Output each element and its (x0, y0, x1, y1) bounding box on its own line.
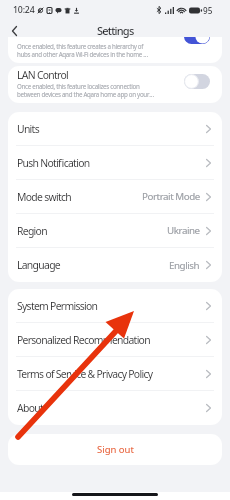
staticText: Personalized Recommendation (17, 333, 150, 347)
staticText: Once enabled, this feature localizes con… (17, 82, 155, 99)
button[interactable]: Sign out (8, 434, 222, 465)
staticText: English (169, 259, 200, 272)
staticText: Language (17, 258, 60, 272)
staticText: Push Notification (17, 156, 90, 170)
button[interactable]: Personalized Recommendation (8, 323, 222, 356)
button[interactable]: Back (6, 23, 22, 39)
button[interactable]: Units (8, 112, 222, 145)
staticText: Sign out (97, 443, 134, 456)
button[interactable]: Terms of Service & Privacy Policy (8, 357, 222, 390)
staticText: 10:24 (13, 4, 35, 16)
button[interactable]: Once enabled, this feature creates a hie… (8, 37, 222, 63)
staticText: About (17, 401, 43, 415)
button[interactable]: LAN Control (8, 66, 222, 103)
staticText: Terms of Service & Privacy Policy (17, 367, 153, 381)
staticText: LAN Control (17, 68, 69, 82)
button[interactable]: Mode switch (8, 180, 222, 213)
button[interactable]: System Permission (8, 289, 222, 322)
staticText: 95 (203, 5, 213, 16)
staticText: System Permission (17, 299, 98, 313)
staticText: Ukraine (167, 224, 200, 237)
button[interactable]: Toggle hierarchy (184, 37, 210, 44)
button[interactable]: Language (8, 248, 222, 282)
staticText: Units (17, 122, 39, 136)
staticText: Settings (97, 23, 134, 38)
button[interactable]: Push Notification (8, 146, 222, 179)
button[interactable]: Toggle LAN Control (184, 74, 210, 89)
staticText: Mode switch (17, 190, 71, 204)
staticText: Region (17, 224, 47, 238)
button[interactable]: About (8, 391, 222, 425)
staticText: Portrait Mode (142, 190, 200, 203)
button[interactable]: Region (8, 214, 222, 247)
staticText: Once enabled, this feature creates a hie… (17, 42, 149, 59)
